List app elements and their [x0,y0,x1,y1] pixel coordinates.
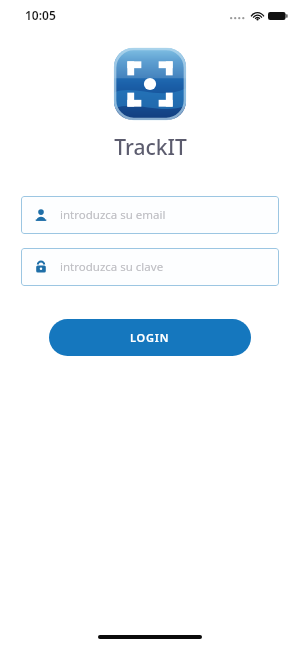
staticText: LOGIN [130,330,170,345]
button[interactable]: introduzca su clave [21,248,279,286]
staticText: introduzca su clave [60,259,164,275]
staticText: 10:05 [25,7,56,23]
staticText: TrackIT [114,133,187,162]
button[interactable]: introduzca su email [21,196,279,234]
other: TrackIT logo [114,48,186,120]
staticText: introduzca su email [60,207,166,223]
button[interactable]: LOGIN [49,319,251,356]
